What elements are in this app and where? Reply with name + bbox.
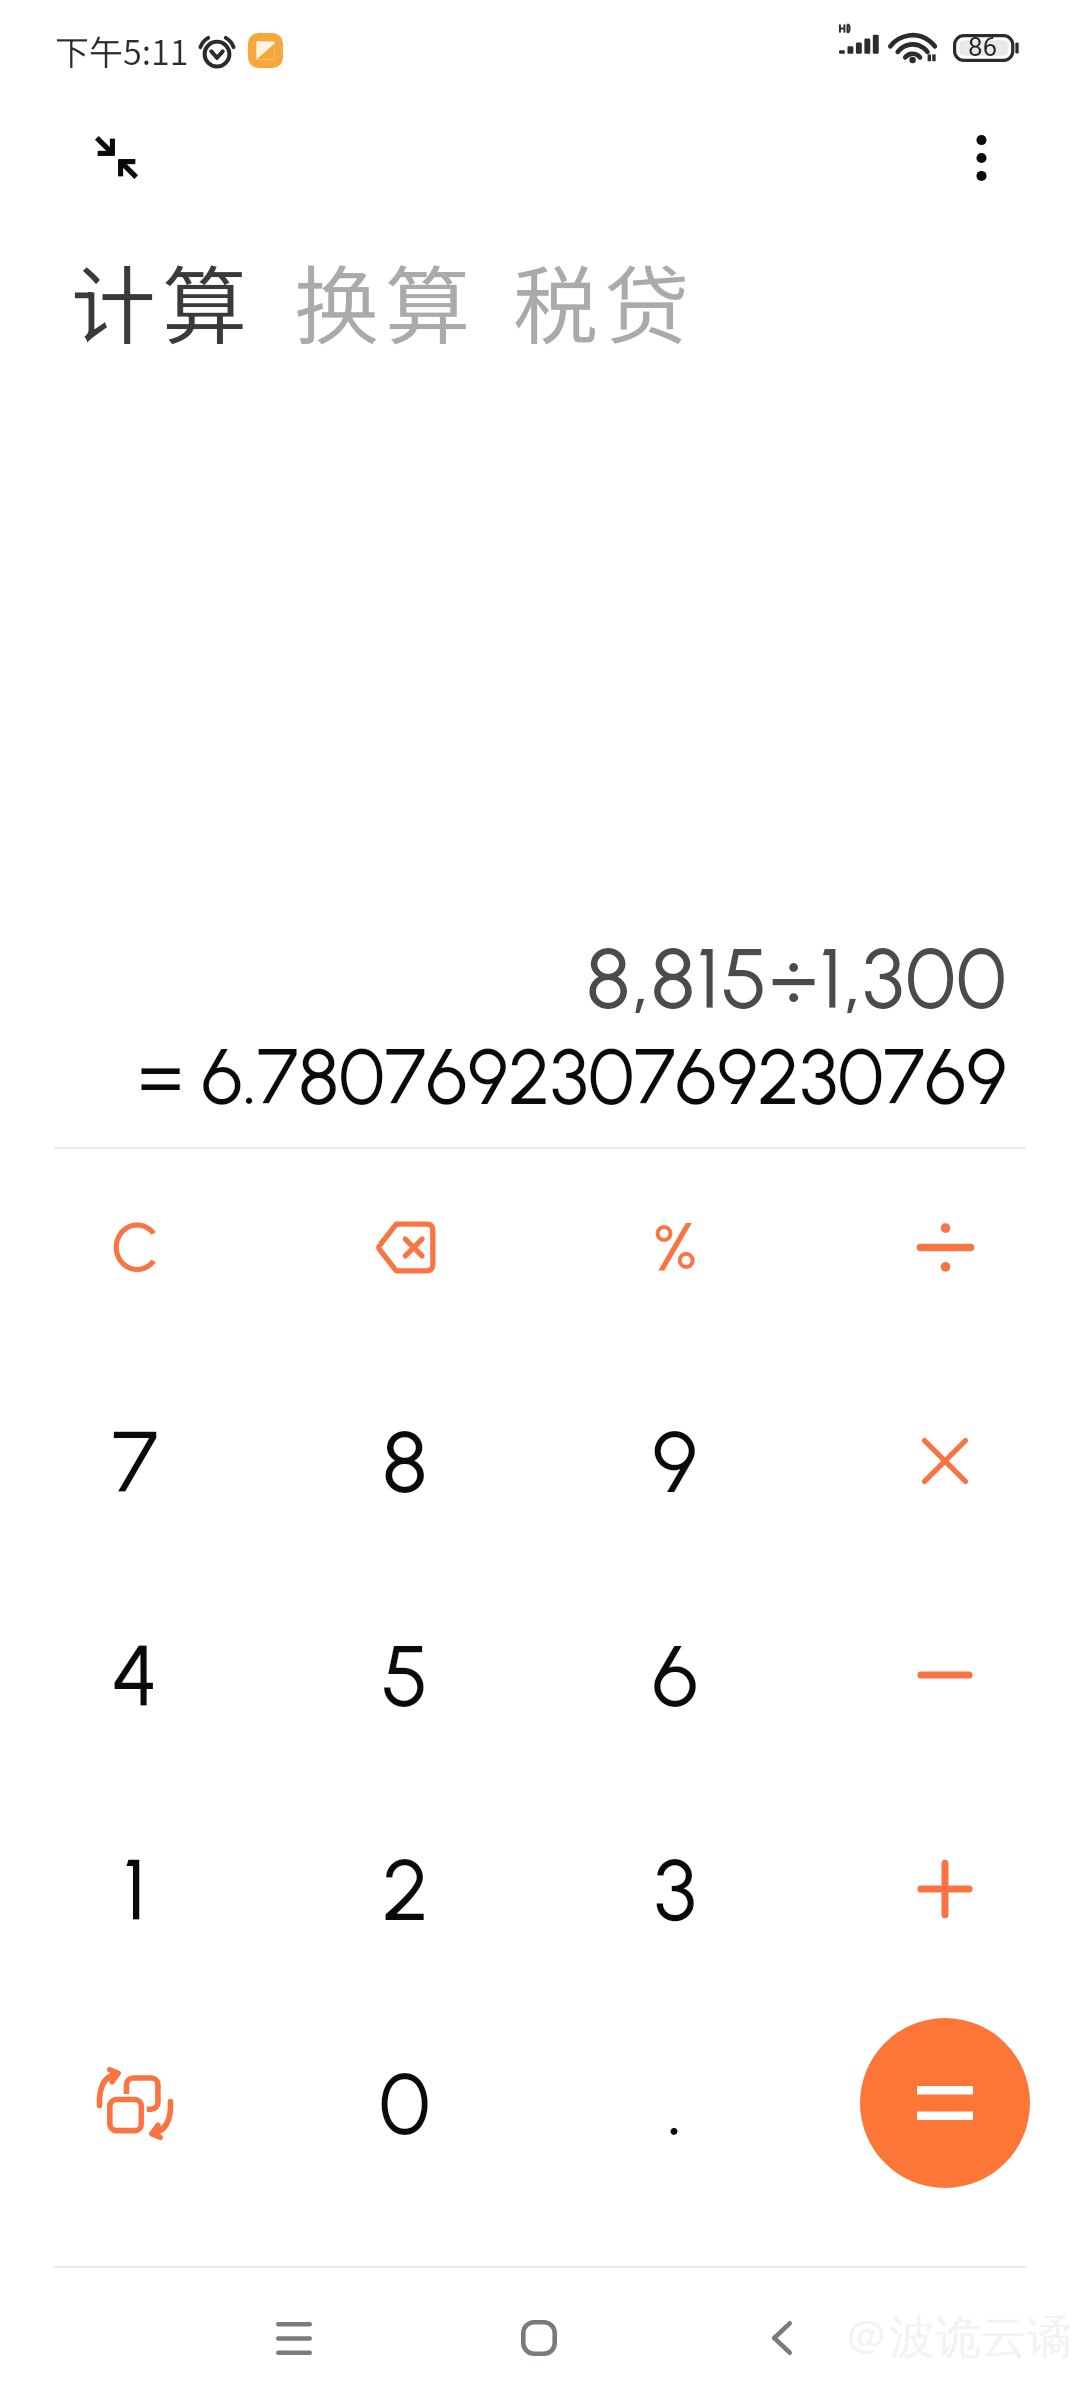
staticText: C [111,1206,160,1288]
button[interactable]: Home [467,2282,611,2394]
button[interactable]: 8 [270,1354,540,1568]
button[interactable]: 6 [540,1568,810,1782]
button[interactable]: Minus [810,1568,1080,1782]
staticText: 计算 [71,238,254,361]
staticText: 下午5:11 [55,26,189,75]
button[interactable]: 3 [540,1782,810,1996]
staticText: 3 [654,1838,697,1941]
staticText: 86 [968,32,998,62]
button[interactable]: 7 [0,1354,270,1568]
button[interactable]: % [540,1140,810,1354]
staticText: % [653,1206,698,1288]
button[interactable]: 换算 [294,238,477,361]
staticText: 7 [112,1410,159,1513]
button[interactable]: Equals [860,2018,1030,2188]
staticText: 6 [652,1624,699,1727]
staticText: 8,815÷1,300 [0,928,1008,1029]
button[interactable]: Back [710,2282,854,2394]
button[interactable]: Multiply [810,1354,1080,1568]
staticText: 税贷 [513,238,696,361]
button[interactable]: Divide [810,1140,1080,1354]
staticText: 4 [111,1624,159,1727]
button[interactable]: 9 [540,1354,810,1568]
staticText: 1 [123,1838,147,1941]
staticText: . [667,2052,683,2155]
button[interactable]: C [0,1140,270,1354]
button[interactable]: Unit converter [0,1996,270,2210]
button[interactable]: 1 [0,1782,270,1996]
staticText: 8 [382,1410,428,1513]
button[interactable]: Plus [810,1782,1080,1996]
button[interactable]: Backspace [270,1140,540,1354]
staticText: 5 [381,1624,429,1727]
staticText: 0 [379,2052,431,2155]
button[interactable]: 4 [0,1568,270,1782]
button[interactable]: Recent apps [222,2282,366,2394]
button[interactable]: 0 [270,1996,540,2210]
button[interactable]: . [540,1996,810,2210]
button[interactable]: 税贷 [513,238,696,361]
button[interactable]: More options [945,122,1017,194]
staticText: 9 [652,1410,698,1513]
button[interactable]: 5 [270,1568,540,1782]
staticText: 换算 [294,238,477,361]
button[interactable]: Collapse [80,121,153,194]
staticText: 2 [382,1838,429,1941]
button[interactable]: 计算 [71,238,254,361]
staticText: ＠波诡云谲 [843,2309,1073,2367]
button[interactable]: 2 [270,1782,540,1996]
staticText: = 6.780769230769230769 [0,1030,1007,1122]
